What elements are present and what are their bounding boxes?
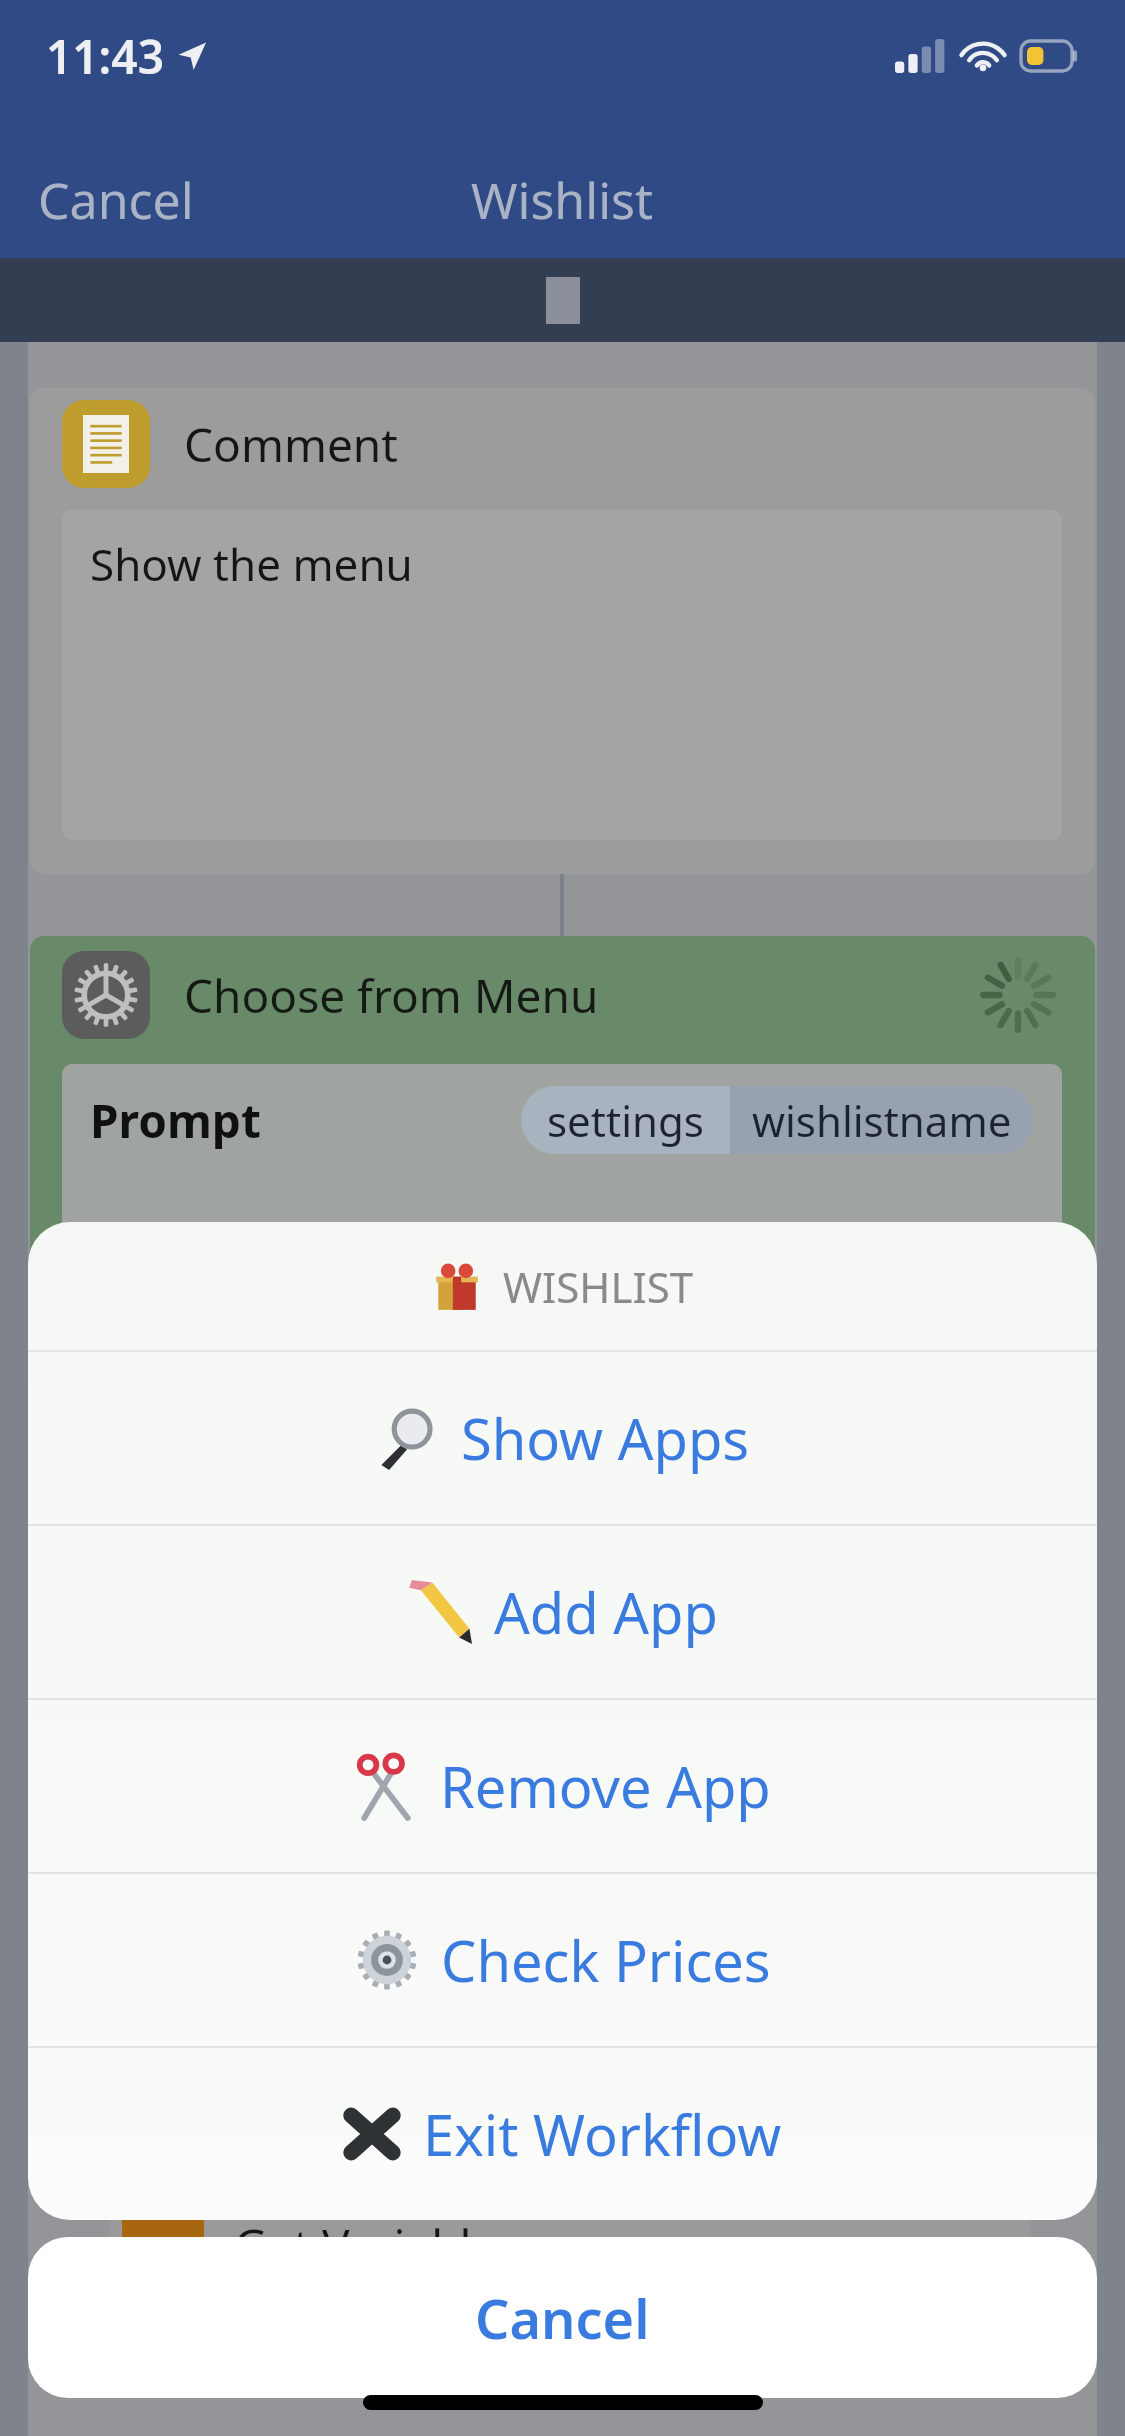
staticText: Add App — [494, 1574, 718, 1650]
staticText: Show the menu — [90, 534, 413, 594]
button[interactable]: Show Apps — [28, 1352, 1097, 1524]
staticText: 11:43 — [46, 25, 164, 88]
staticText: Get Variable — [234, 2214, 498, 2277]
button[interactable]: Prompt — [62, 1064, 1062, 1274]
staticText: Cancel — [38, 166, 194, 234]
staticText: settings — [547, 1092, 704, 1149]
staticText: Check Prices — [441, 1922, 771, 1998]
button[interactable]: settings — [521, 1086, 1034, 1154]
button[interactable]: Cancel — [38, 166, 194, 234]
button[interactable]: Comment — [30, 388, 1095, 874]
button[interactable]: x — [110, 2186, 1030, 2316]
button[interactable]: Remove App — [28, 1700, 1097, 1872]
staticText: Cancel — [475, 2281, 650, 2355]
staticText: wishlistname — [752, 1092, 1012, 1149]
staticText: Exit Workflow — [423, 2096, 782, 2172]
staticText: WISHLIST — [503, 1258, 694, 1315]
staticText: Comment — [184, 413, 398, 476]
staticText: Wishlist — [471, 166, 654, 234]
button[interactable]: Exit Workflow — [28, 2048, 1097, 2220]
staticText: x — [150, 2215, 176, 2275]
button[interactable]: Check Prices — [28, 1874, 1097, 2046]
button[interactable]: Cancel — [28, 2237, 1097, 2398]
staticText: Prompt — [90, 1089, 261, 1152]
button[interactable]: Show the menu — [62, 510, 1062, 840]
staticText: Remove App — [440, 1748, 771, 1824]
staticText: Choose from Menu — [184, 964, 599, 1027]
button[interactable]: Add App — [28, 1526, 1097, 1698]
button[interactable]: Choose from Menu — [30, 936, 1095, 1276]
staticText: Show Apps — [461, 1400, 750, 1476]
